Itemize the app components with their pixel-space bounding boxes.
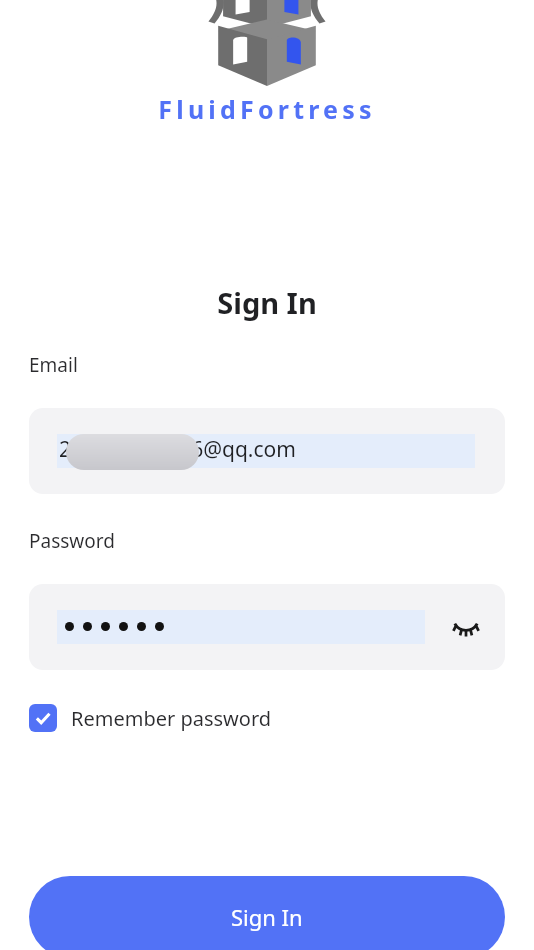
staticText: FluidFortress (0, 92, 534, 126)
staticText: Email (29, 352, 78, 378)
staticText: Password (29, 528, 115, 554)
button[interactable]: 2 6@qq.com (29, 408, 505, 494)
button[interactable] (57, 610, 425, 644)
staticText: Sign In (0, 283, 534, 322)
staticText: 2 6@qq.com (59, 435, 296, 464)
button[interactable]: Show password (445, 606, 487, 648)
staticText: Remember password (71, 705, 272, 732)
button[interactable]: Sign In (29, 876, 505, 950)
button[interactable]: Remember password (29, 697, 272, 739)
staticText: Sign In (231, 902, 303, 932)
